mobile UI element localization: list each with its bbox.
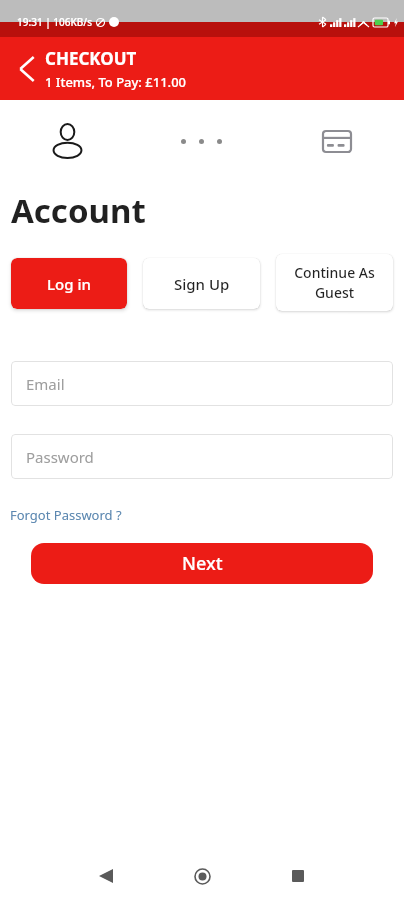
button[interactable]: Next: [31, 543, 373, 584]
staticText: Account: [11, 188, 146, 233]
staticText: Log in: [47, 274, 91, 294]
button[interactable]: Account: [0, 118, 134, 164]
staticText: Sign Up: [174, 274, 230, 294]
button[interactable]: Back: [8, 50, 46, 88]
staticText: Password: [26, 447, 94, 467]
staticText: CHECKOUT: [45, 47, 137, 70]
button[interactable]: Recent apps: [278, 856, 318, 896]
staticText: 19:31 | 106KB/s: [17, 15, 93, 29]
staticText: Email: [26, 374, 65, 394]
button[interactable]: Payment: [269, 118, 404, 164]
button[interactable]: Email: [11, 361, 393, 406]
button[interactable]: Log in: [11, 258, 127, 309]
button[interactable]: Back: [86, 856, 126, 896]
staticText: 1 Items, To Pay: £11.00: [45, 73, 186, 91]
button[interactable]: Continue As Guest: [276, 254, 393, 311]
button[interactable]: Sign Up: [143, 258, 260, 309]
button[interactable]: Forgot Password ?: [10, 506, 122, 524]
staticText: Next: [182, 551, 223, 576]
button[interactable]: More options: [134, 118, 269, 164]
staticText: Continue As Guest: [282, 263, 387, 303]
button[interactable]: Password: [11, 434, 393, 479]
button[interactable]: Home: [182, 856, 222, 896]
